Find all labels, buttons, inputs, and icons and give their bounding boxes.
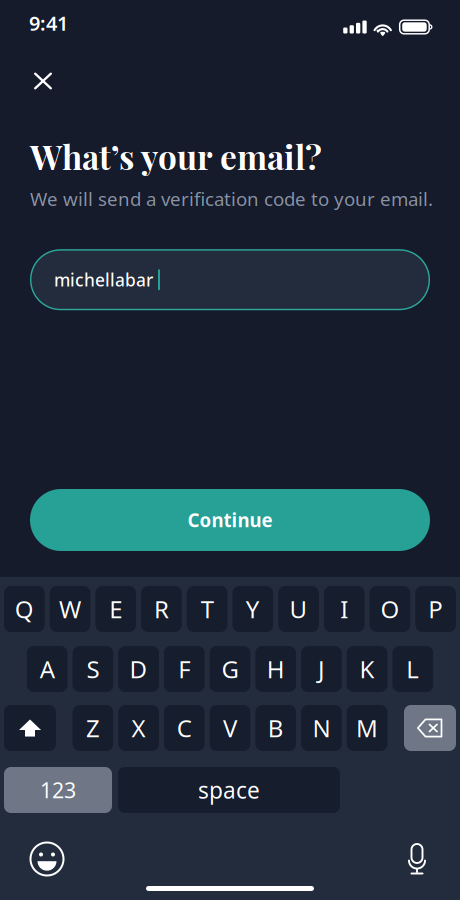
button[interactable]: C [164,705,205,751]
button[interactable]: I [324,586,365,632]
button[interactable]: G [210,646,250,692]
staticText: D [130,653,148,685]
staticText: R [154,593,169,625]
staticText: A [40,653,55,685]
staticText: Z [86,712,100,744]
staticText: O [380,593,399,625]
button[interactable]: 123 [4,767,112,813]
button[interactable]: W [50,586,90,632]
staticText: M [356,712,378,744]
button[interactable]: P [415,586,456,632]
staticText: michellabar [54,268,153,291]
button[interactable]: Dictation [406,842,428,876]
staticText: W [59,593,81,625]
staticText: T [201,593,214,625]
button[interactable]: R [141,586,182,632]
button[interactable]: F [164,646,205,692]
button[interactable]: space [118,767,340,813]
staticText: N [312,712,330,744]
button[interactable]: Close [21,59,65,103]
staticText: V [223,712,237,744]
staticText: space [198,775,260,805]
button[interactable]: D [118,646,159,692]
staticText: E [109,593,122,625]
staticText: J [318,653,325,685]
staticText: H [267,653,285,685]
button[interactable]: H [255,646,296,692]
staticText: I [340,593,348,625]
button[interactable]: Shift [4,705,56,751]
button[interactable]: Continue [0,489,460,551]
staticText: L [406,653,419,685]
button[interactable]: Y [232,586,273,632]
staticText: K [360,653,375,685]
staticText: F [178,653,190,685]
staticText: 9:41 [29,10,68,36]
button[interactable]: S [73,646,113,692]
button[interactable]: Q [4,586,45,632]
staticText: X [132,712,146,744]
button[interactable]: Emoji keyboard [30,842,64,876]
staticText: What’s your email? [30,134,322,178]
button[interactable]: L [392,646,433,692]
staticText: Continue [187,508,272,532]
staticText: S [86,653,99,685]
staticText: We will send a verification code to your… [30,186,433,211]
staticText: 123 [40,776,76,804]
staticText: Y [246,593,260,625]
staticText: U [290,593,308,625]
button[interactable]: M [347,705,387,751]
staticText: Q [15,593,34,625]
staticText: G [221,653,238,685]
button[interactable]: N [301,705,342,751]
button[interactable]: U [278,586,319,632]
button[interactable]: Delete [404,705,456,751]
button[interactable]: E [95,586,136,632]
staticText: P [428,593,443,625]
button[interactable]: V [210,705,250,751]
button[interactable]: Z [73,705,113,751]
button[interactable]: J [301,646,342,692]
staticText: C [177,712,192,744]
staticText: B [268,712,284,744]
button[interactable]: X [118,705,159,751]
button[interactable]: K [347,646,387,692]
button[interactable]: O [370,586,410,632]
button[interactable]: B [255,705,296,751]
button[interactable]: A [27,646,68,692]
button[interactable]: T [187,586,227,632]
